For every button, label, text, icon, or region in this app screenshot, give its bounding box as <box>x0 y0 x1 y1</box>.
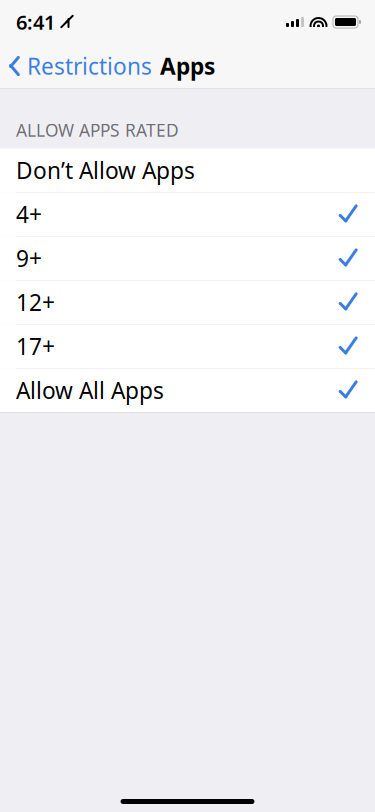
staticText: ALLOW APPS RATED <box>16 118 179 141</box>
button[interactable]: Allow All Apps <box>0 368 375 412</box>
button[interactable]: Don’t Allow Apps <box>0 148 375 192</box>
staticText: 12+ <box>16 287 55 317</box>
staticText: Allow All Apps <box>16 375 164 405</box>
staticText: 9+ <box>16 243 42 273</box>
button[interactable]: 12+ <box>0 280 375 324</box>
staticText: 4+ <box>16 199 42 229</box>
staticText: Restrictions <box>27 51 152 81</box>
staticText: Apps <box>160 51 215 81</box>
button[interactable]: Restrictions <box>0 44 162 88</box>
staticText: Don’t Allow Apps <box>16 155 195 185</box>
button[interactable]: 4+ <box>0 192 375 236</box>
staticText: 6:41 <box>16 9 55 35</box>
button[interactable]: 9+ <box>0 236 375 280</box>
staticText: 17+ <box>16 331 55 361</box>
button[interactable]: 17+ <box>0 324 375 368</box>
